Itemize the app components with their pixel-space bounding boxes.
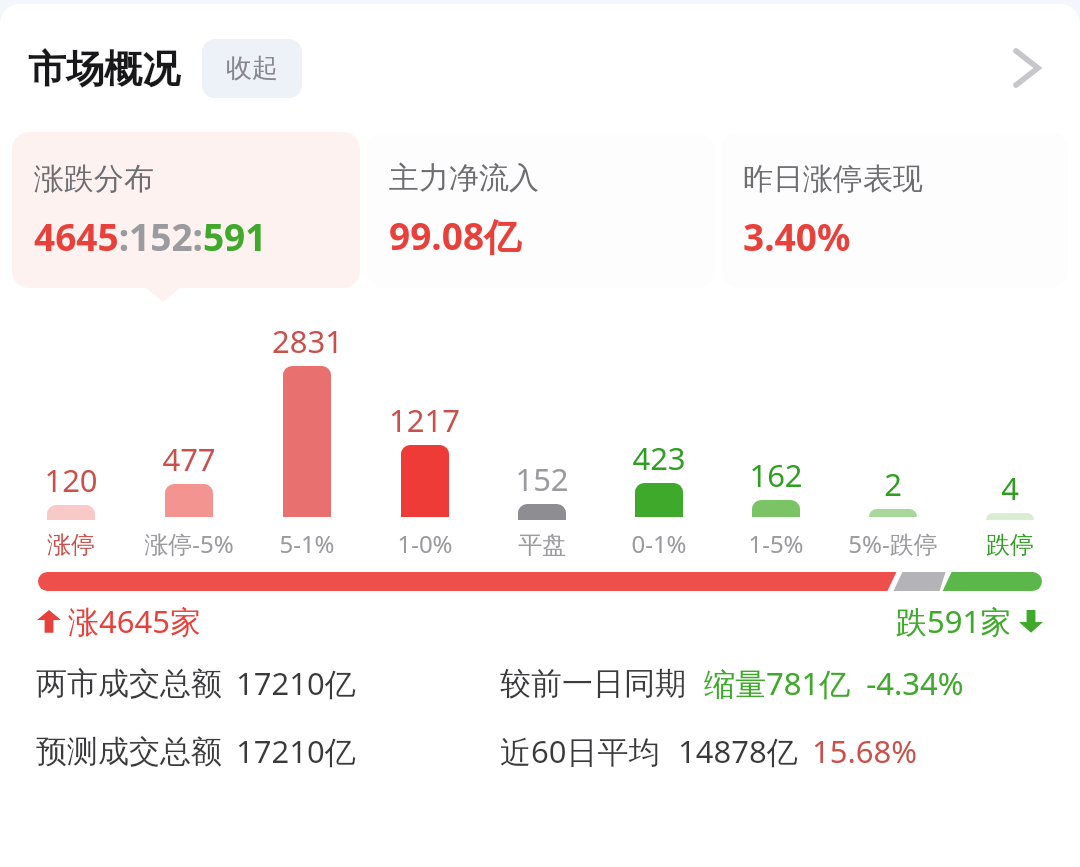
staticText: 4645:152:591 xyxy=(34,211,267,261)
staticText: 涨4645家 xyxy=(68,600,201,642)
staticText: 缩量781亿 -4.34% xyxy=(704,662,964,704)
button[interactable]: 2 xyxy=(834,463,951,560)
staticText: 1217 xyxy=(389,399,460,441)
staticText: 4 xyxy=(1001,467,1019,509)
button[interactable]: 162 xyxy=(717,454,834,560)
staticText: 162 xyxy=(749,454,803,496)
staticText: 120 xyxy=(44,459,98,501)
staticText: 跌停 xyxy=(986,530,1034,560)
staticText: 14878亿 xyxy=(678,730,798,772)
button[interactable]: 4 xyxy=(951,467,1068,560)
staticText: 3.40% xyxy=(743,211,851,261)
staticText: 近60日平均 xyxy=(500,730,660,772)
staticText: 市场概况 xyxy=(28,45,180,93)
staticText: 涨停 xyxy=(47,530,95,560)
button[interactable]: 昨日涨停表现 xyxy=(721,132,1068,288)
button[interactable]: 423 xyxy=(600,437,717,560)
staticText: 15.68% xyxy=(812,730,917,772)
button[interactable]: 涨跌分布 xyxy=(12,132,360,288)
staticText: 5-1% xyxy=(279,527,335,560)
staticText: 1-5% xyxy=(748,527,804,560)
staticText: 预测成交总额 xyxy=(36,732,222,771)
staticText: 423 xyxy=(632,437,686,479)
staticText: 涨停-5% xyxy=(144,527,234,560)
staticText: 0-1% xyxy=(631,527,687,560)
staticText: 5%-跌停 xyxy=(848,527,938,560)
staticText: 99.08亿 xyxy=(389,210,522,261)
staticText: 平盘 xyxy=(518,530,566,560)
button[interactable]: 152 xyxy=(483,458,600,560)
button[interactable]: 1217 xyxy=(366,399,483,560)
button[interactable]: 2831 xyxy=(248,320,366,560)
staticText: 两市成交总额 xyxy=(36,664,222,703)
staticText: 主力净流入 xyxy=(389,159,539,197)
staticText: 477 xyxy=(162,438,216,480)
staticText: 2 xyxy=(884,463,902,505)
staticText: 涨跌分布 xyxy=(34,160,154,198)
staticText: 152 xyxy=(515,458,569,500)
staticText: 较前一日同期 xyxy=(500,664,686,703)
staticText: 1-0% xyxy=(397,527,453,560)
staticText: 2831 xyxy=(272,320,343,362)
staticText: 收起 xyxy=(226,52,278,85)
staticText: 17210亿 xyxy=(236,662,356,704)
button[interactable]: 120 xyxy=(12,459,130,560)
button[interactable]: 收起 xyxy=(202,39,302,98)
staticText: 17210亿 xyxy=(236,730,356,772)
staticText: 昨日涨停表现 xyxy=(743,160,923,198)
button[interactable]: Open market overview details xyxy=(1000,38,1060,98)
staticText: 跌591家 xyxy=(896,600,1012,642)
button[interactable]: 477 xyxy=(130,438,248,560)
button[interactable]: 主力净流入 xyxy=(367,132,714,288)
